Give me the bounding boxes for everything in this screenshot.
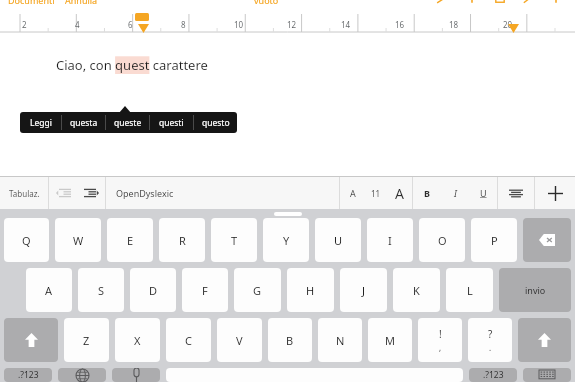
button[interactable]: More <box>549 0 563 5</box>
button[interactable]: Shift <box>518 318 571 362</box>
staticText: 14 <box>341 19 351 30</box>
button[interactable]: M <box>368 318 412 362</box>
staticText: C <box>185 333 192 348</box>
button[interactable]: U <box>469 177 497 209</box>
button[interactable]: Y <box>263 218 309 262</box>
staticText: A <box>350 187 356 199</box>
button[interactable]: Insert <box>535 177 575 209</box>
staticText: G <box>253 283 262 298</box>
staticText: , <box>439 342 442 353</box>
button[interactable]: B <box>268 318 312 362</box>
button[interactable]: invio <box>499 268 571 312</box>
staticText: X <box>134 333 141 348</box>
button[interactable]: Right indent marker <box>508 24 519 33</box>
button[interactable]: U <box>315 218 361 262</box>
button[interactable]: Documenti <box>8 0 55 5</box>
button[interactable]: queste <box>106 112 149 133</box>
button[interactable]: Hide keyboard <box>523 368 571 382</box>
button[interactable]: J <box>340 268 387 312</box>
staticText: 10 <box>234 19 244 30</box>
button[interactable]: Format <box>521 0 535 5</box>
button[interactable]: Tabulaz. <box>0 177 48 209</box>
button[interactable]: ! <box>418 318 462 362</box>
staticText: J <box>362 283 366 298</box>
button[interactable]: questo <box>194 112 237 133</box>
button[interactable]: .?123 <box>469 368 517 382</box>
staticText: A <box>45 283 53 298</box>
button[interactable]: P <box>471 218 517 262</box>
button[interactable]: OpenDyslexic <box>116 177 174 209</box>
button[interactable]: L <box>446 268 493 312</box>
staticText: 18 <box>449 19 459 30</box>
button[interactable]: questi <box>150 112 193 133</box>
button[interactable]: B <box>413 177 441 209</box>
button[interactable]: Increase font size <box>386 177 412 209</box>
button[interactable]: Increase indent <box>77 177 105 209</box>
button[interactable]: S <box>78 268 124 312</box>
button[interactable]: Change keyboard <box>58 368 106 382</box>
button[interactable]: Dictate <box>112 368 160 382</box>
staticText: 4 <box>75 19 80 30</box>
staticText: B <box>424 187 430 199</box>
button[interactable]: I <box>441 177 469 209</box>
staticText: . <box>489 342 492 353</box>
button[interactable]: Delete <box>523 218 571 262</box>
button[interactable]: Annulla <box>65 0 98 5</box>
button[interactable]: V <box>217 318 262 362</box>
staticText: V <box>236 333 243 348</box>
button[interactable]: A <box>26 268 72 312</box>
staticText: questa <box>70 117 98 129</box>
button[interactable]: N <box>318 318 362 362</box>
staticText: W <box>73 233 84 248</box>
staticText: .?123 <box>18 369 39 381</box>
button[interactable]: D <box>130 268 176 312</box>
button[interactable]: Z <box>64 318 109 362</box>
staticText: questi <box>159 117 184 129</box>
staticText: OpenDyslexic <box>116 187 174 199</box>
button[interactable]: W <box>55 218 101 262</box>
staticText: Y <box>283 233 290 248</box>
button[interactable]: questa <box>62 112 105 133</box>
button[interactable]: H <box>287 268 334 312</box>
button[interactable]: Media <box>493 0 507 5</box>
button[interactable]: Shift <box>4 318 58 362</box>
button[interactable]: Decrease indent <box>49 177 77 209</box>
staticText: ? <box>488 327 493 341</box>
button[interactable]: E <box>107 218 153 262</box>
button[interactable]: Keyboard handle <box>274 212 302 216</box>
staticText: U <box>480 187 487 199</box>
staticText: D <box>149 283 158 298</box>
button[interactable]: I <box>367 218 413 262</box>
staticText: M <box>385 333 395 348</box>
button[interactable]: .?123 <box>4 368 52 382</box>
staticText: I <box>388 233 392 248</box>
button[interactable]: Leggi <box>20 112 61 133</box>
button[interactable]: O <box>419 218 465 262</box>
button[interactable]: Decrease font size <box>340 177 366 209</box>
staticText: ! <box>439 327 442 341</box>
staticText: 11 <box>371 188 381 199</box>
staticText: S <box>98 283 105 298</box>
staticText: invio <box>525 284 546 296</box>
staticText: F <box>202 283 208 298</box>
button[interactable]: R <box>159 218 205 262</box>
button[interactable]: T <box>211 218 257 262</box>
button[interactable]: X <box>115 318 160 362</box>
staticText: vuoto <box>254 0 279 5</box>
button[interactable]: C <box>166 318 211 362</box>
button[interactable]: Edit tools <box>435 0 449 5</box>
button[interactable]: K <box>393 268 440 312</box>
button[interactable]: G <box>234 268 281 312</box>
button[interactable]: F <box>182 268 228 312</box>
button[interactable]: Insert <box>465 0 479 5</box>
staticText: Q <box>22 233 31 248</box>
button[interactable]: 11 <box>366 177 386 209</box>
staticText: questo <box>202 117 230 129</box>
button[interactable]: Alignment <box>498 177 534 209</box>
button[interactable]: ? <box>468 318 512 362</box>
staticText: I <box>454 187 457 199</box>
staticText: 8 <box>181 19 186 30</box>
button[interactable]: Q <box>4 218 49 262</box>
button[interactable]: Left indent marker <box>138 24 149 33</box>
